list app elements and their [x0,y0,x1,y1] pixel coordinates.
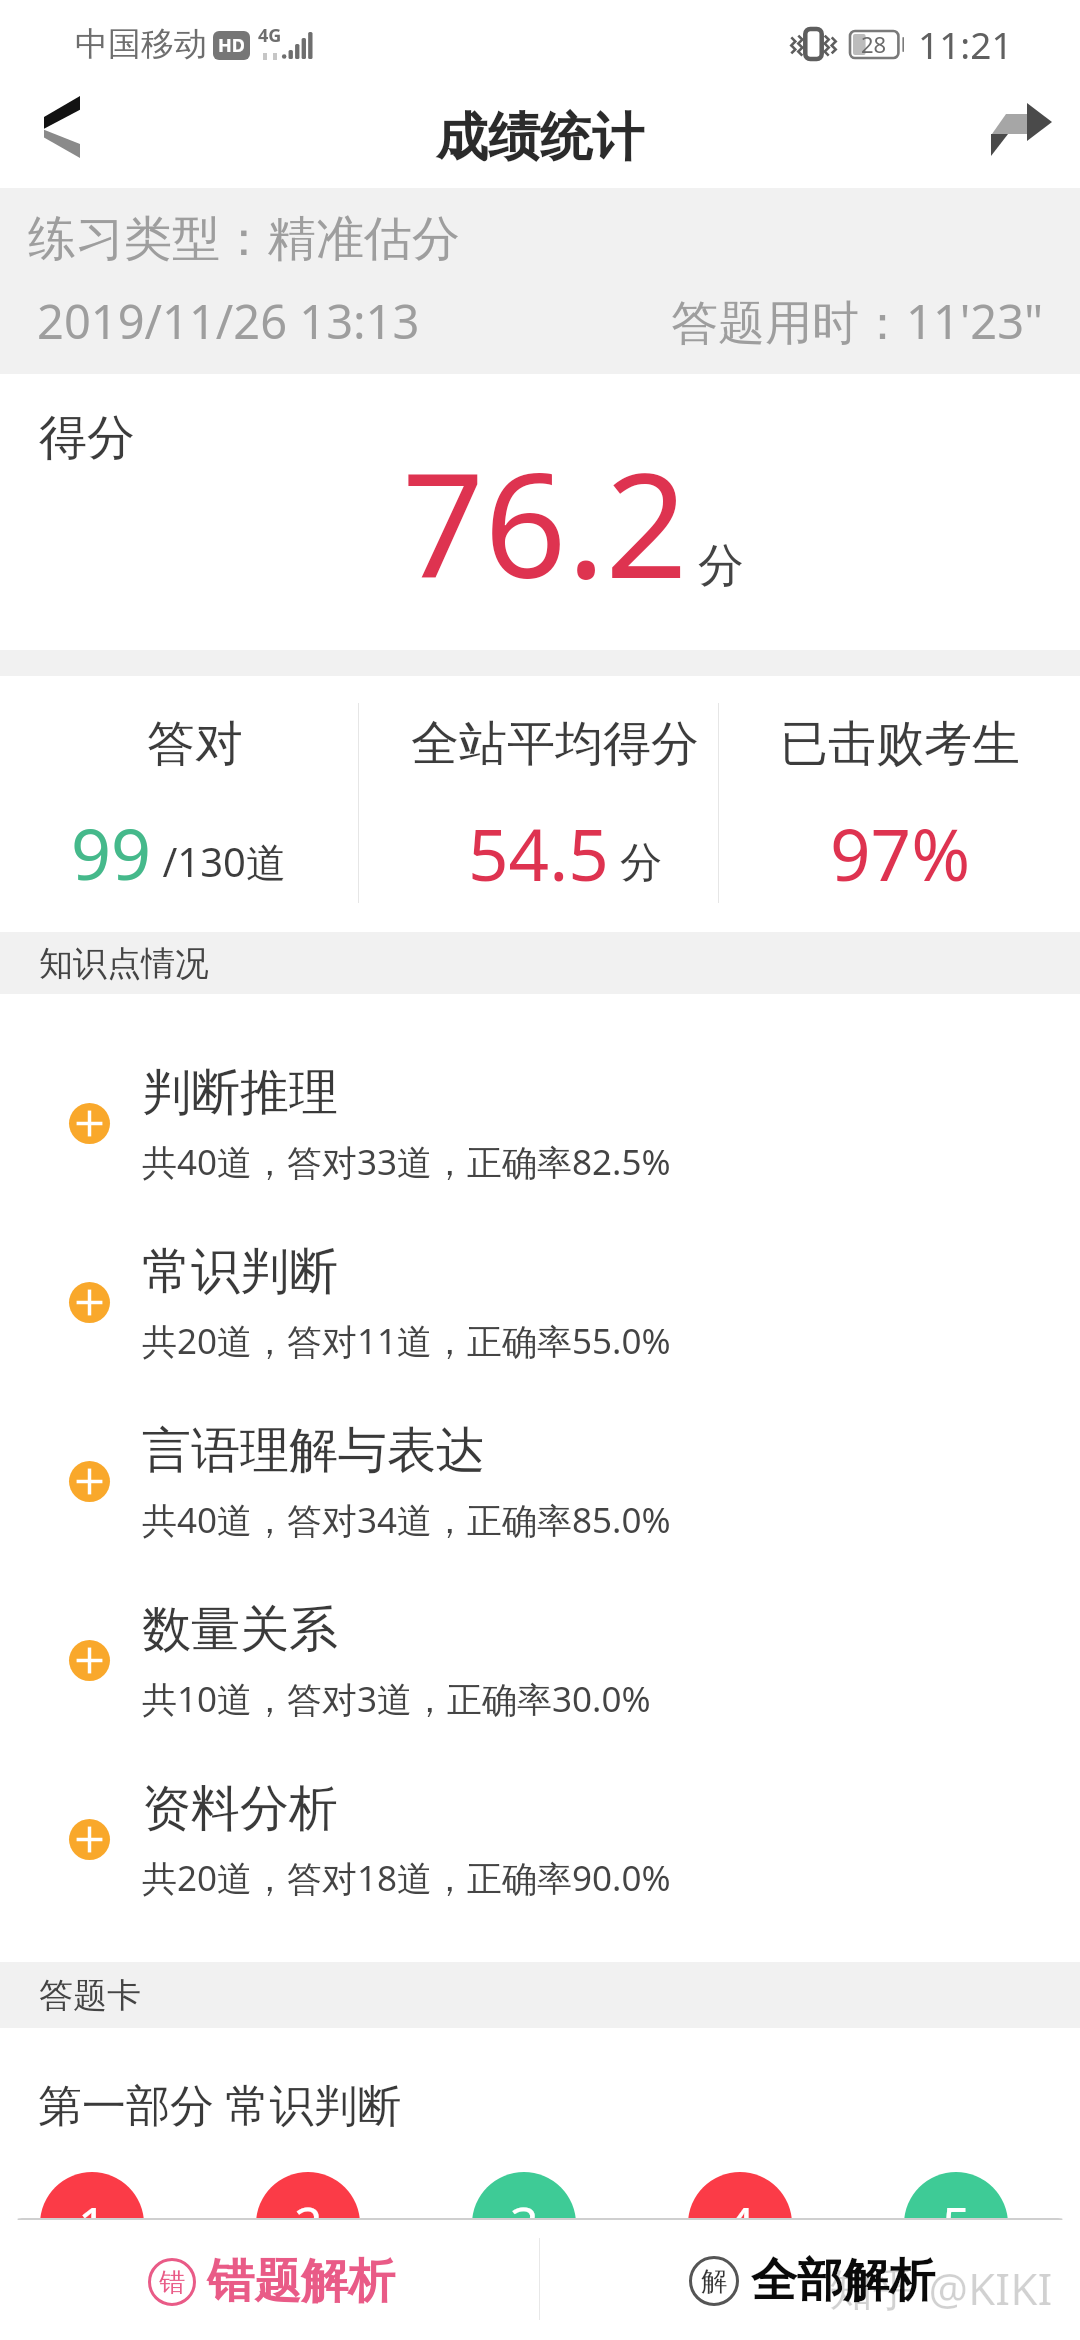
staticText: 判断推理 [142,1062,338,1124]
staticText: 共10道，答对3道，正确率30.0% [142,1675,651,1723]
staticText: 错题解析 [207,2252,395,2311]
staticText: 11:21 [918,19,1013,69]
button[interactable]: 1 [40,2172,144,2276]
staticText: 3 [510,2190,539,2258]
staticText: 解 [701,2265,727,2298]
button[interactable]: 资料分析 [0,1750,1080,1929]
staticText: 54.5 [468,805,609,902]
staticText: 第一部分 常识判断 [38,2074,402,2134]
staticText: 分 [609,832,662,889]
staticText: 97% [830,805,971,902]
staticText: 共20道，答对18道，正确率90.0% [142,1854,671,1902]
staticText: 言语理解与表达 [142,1420,485,1482]
staticText: 2019/11/26 13:13 [37,289,420,353]
staticText: 知识点情况 [39,942,209,985]
staticText: 资料分析 [142,1778,338,1840]
staticText: 共40道，答对34道，正确率85.0% [142,1496,671,1544]
button[interactable]: 3 [472,2172,576,2276]
staticText: 共20道，答对11道，正确率55.0% [142,1317,671,1365]
staticText: 76.2 [402,424,688,620]
staticText: 错 [159,2266,185,2299]
staticText: HD [218,33,245,58]
button[interactable]: 4 [688,2172,792,2276]
staticText: 得分 [39,408,135,468]
staticText: 共40道，答对33道，正确率82.5% [142,1138,671,1186]
staticText: 答题用时：11'23" [671,289,1044,353]
button[interactable]: 错 [0,2218,539,2340]
staticText: 常识判断 [142,1241,338,1303]
staticText: 全站平均得分 [411,714,699,774]
staticText: 答对 [147,714,243,774]
staticText: 全部解析 [751,2252,935,2310]
button[interactable]: 数量关系 [0,1571,1080,1750]
staticText: 5 [942,2190,971,2258]
staticText: 练习类型：精准估分 [28,209,460,269]
staticText: 4 [726,2190,755,2258]
staticText: 99 [71,805,152,900]
staticText: 数量关系 [142,1599,338,1661]
staticText: 中国移动 [75,23,207,65]
button[interactable]: 常识判断 [0,1213,1080,1392]
staticText: 成绩统计 [436,105,644,171]
staticText: /130道 [152,834,286,889]
staticText: 知乎 @KIKI [829,2258,1053,2318]
button[interactable]: 5 [904,2172,1008,2276]
button[interactable]: 解 [540,2218,1080,2340]
button[interactable]: 言语理解与表达 [0,1392,1080,1571]
staticText: 4G [258,23,282,48]
staticText: 答题卡 [39,1974,141,2017]
button[interactable]: Back [0,88,124,188]
button[interactable]: 判断推理 [0,1034,1080,1213]
button[interactable]: 2 [256,2172,360,2276]
staticText: 已击败考生 [780,714,1020,774]
staticText: 分 [698,537,744,595]
staticText: 1 [78,2190,107,2258]
staticText: 28 [861,29,887,59]
staticText: 2 [294,2190,323,2258]
button[interactable]: Share [962,88,1080,188]
